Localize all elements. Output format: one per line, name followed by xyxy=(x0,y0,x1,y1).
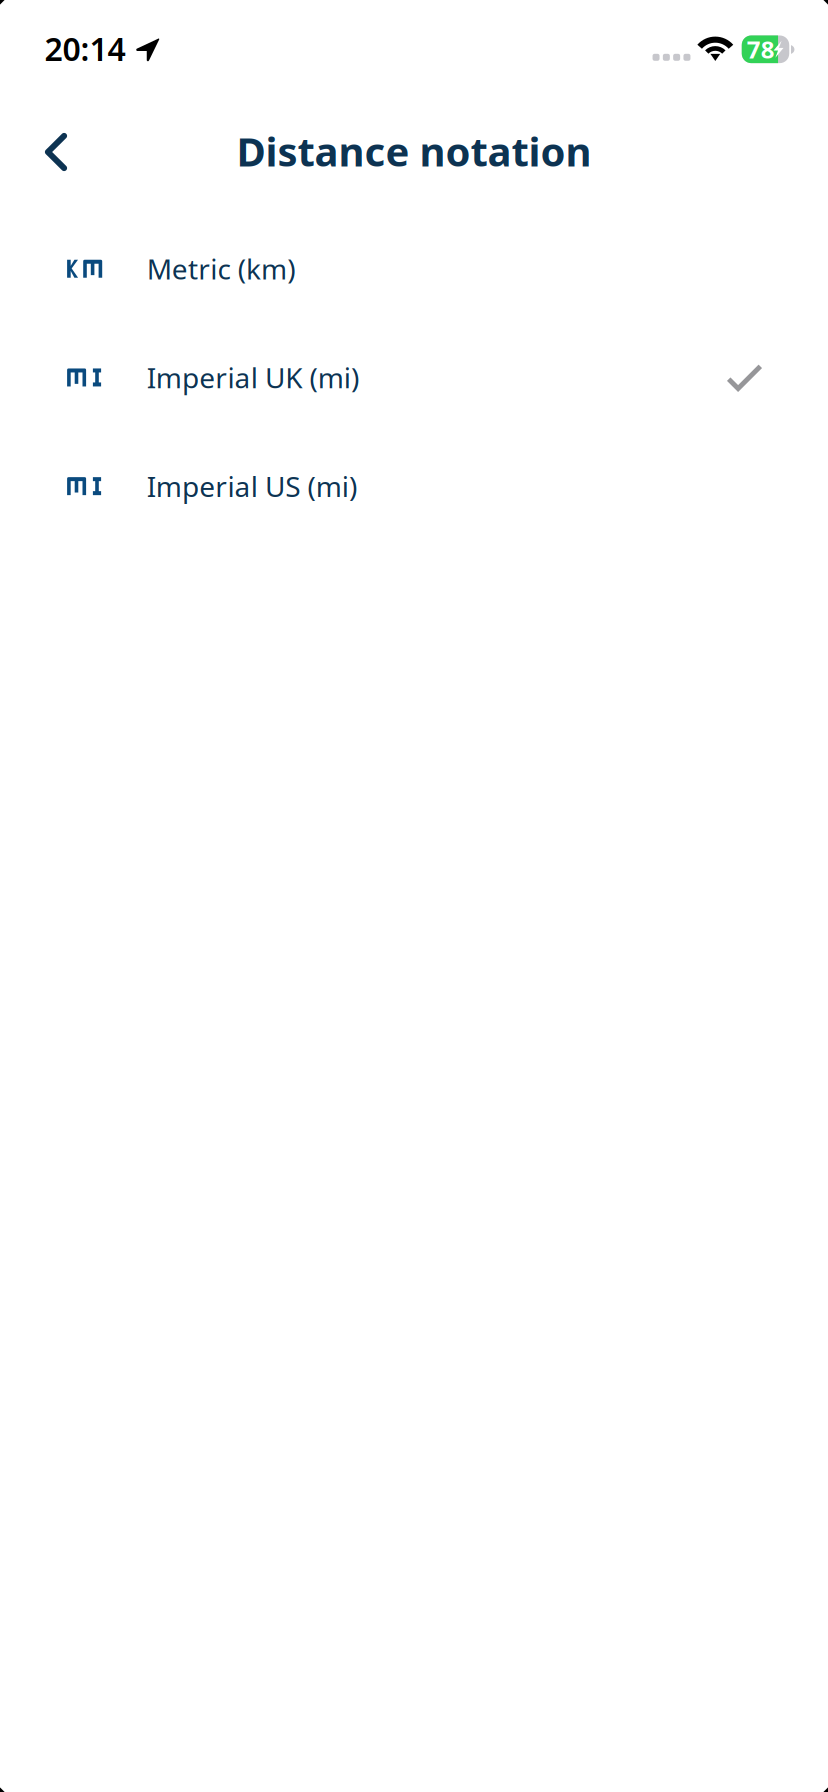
staticText: 78 xyxy=(747,33,775,65)
button[interactable]: Back xyxy=(18,114,94,190)
staticText: Imperial US (mi) xyxy=(147,468,357,505)
button[interactable]: Imperial UK (mi) xyxy=(0,323,828,432)
staticText: Metric (km) xyxy=(147,250,295,287)
button[interactable]: Imperial US (mi) xyxy=(0,432,828,540)
staticText: Imperial UK (mi) xyxy=(147,359,359,396)
button[interactable]: Metric (km) xyxy=(0,214,828,323)
staticText: Distance notation xyxy=(236,124,591,177)
staticText: 20:14 xyxy=(44,27,125,70)
